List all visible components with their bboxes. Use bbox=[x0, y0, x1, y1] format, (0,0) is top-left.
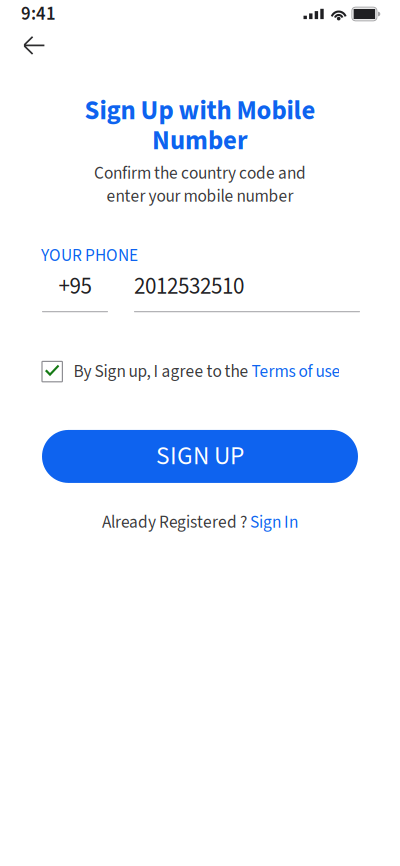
staticText: By Sign up, I agree to the bbox=[73, 359, 251, 384]
staticText: Terms of use bbox=[251, 359, 340, 384]
button[interactable]: Terms of use bbox=[251, 359, 340, 384]
staticText: Sign In bbox=[250, 510, 298, 535]
staticText: 9:41 bbox=[21, 1, 56, 27]
staticText: 2012532510 bbox=[134, 270, 244, 303]
button[interactable]: Agree to terms bbox=[42, 361, 62, 382]
button[interactable]: Sign In bbox=[250, 510, 298, 535]
staticText: enter your mobile number bbox=[106, 184, 293, 209]
staticText: SIGN UP bbox=[156, 438, 244, 474]
staticText: Number bbox=[152, 122, 248, 160]
staticText: Already Registered ? bbox=[102, 510, 250, 535]
staticText: +95 bbox=[58, 270, 91, 303]
staticText: Sign Up with Mobile bbox=[84, 92, 315, 130]
button[interactable]: Back bbox=[12, 25, 56, 66]
button[interactable]: SIGN UP bbox=[42, 430, 358, 483]
staticText: Confirm the country code and bbox=[94, 161, 306, 186]
staticText: YOUR PHONE bbox=[41, 243, 138, 268]
